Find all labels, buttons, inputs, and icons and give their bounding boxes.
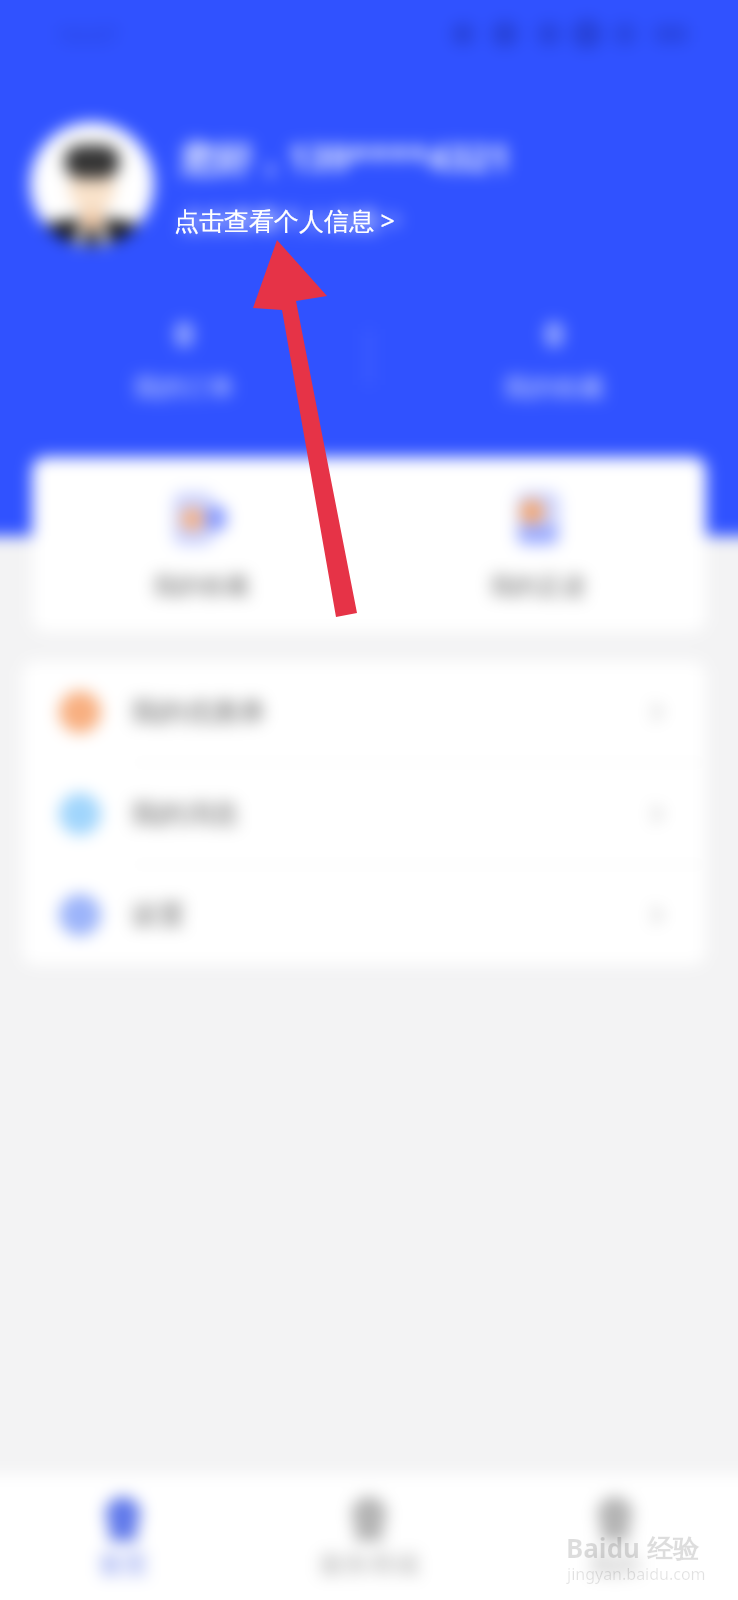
button[interactable]: 0 xyxy=(0,312,368,403)
button[interactable]: 0 xyxy=(370,312,738,403)
staticText: 我的收藏 xyxy=(153,571,249,601)
button[interactable]: 您好，139****4321 xyxy=(0,122,738,246)
button[interactable]: 设置 xyxy=(22,865,706,965)
button[interactable]: 我的消息 xyxy=(22,763,706,865)
button[interactable]: 我的 xyxy=(492,1474,738,1600)
staticText: Baidu 经验 xyxy=(566,1530,699,1566)
button[interactable]: 我的收藏 xyxy=(32,457,369,632)
staticText: 我的订单 xyxy=(134,372,234,403)
staticText: 点击查看个人信息 > xyxy=(174,203,395,237)
staticText: 首页 xyxy=(98,1549,148,1580)
button[interactable]: 我的足迹 xyxy=(369,457,706,632)
staticText: 点击查看个人信息 > xyxy=(180,202,401,236)
staticText: 我的优惠券 xyxy=(131,695,266,729)
staticText: 我的 xyxy=(590,1549,640,1580)
staticText: 您好，139****4321 xyxy=(180,133,511,182)
button[interactable]: 服务商城 xyxy=(246,1474,492,1600)
staticText: 我的消息 xyxy=(131,797,239,831)
staticText: 我的收藏 xyxy=(504,372,604,403)
button[interactable]: 点击查看个人信息 > xyxy=(174,203,395,237)
staticText: 服务商城 xyxy=(319,1549,419,1580)
button[interactable]: 我的优惠券 xyxy=(22,661,706,763)
button[interactable]: 首页 xyxy=(0,1474,246,1600)
staticText: 0 xyxy=(175,312,194,356)
staticText: 设置 xyxy=(131,898,185,932)
staticText: 0 xyxy=(545,312,564,356)
staticText: 我的足迹 xyxy=(490,571,586,601)
staticText: jingyan.baidu.com xyxy=(567,1563,706,1585)
